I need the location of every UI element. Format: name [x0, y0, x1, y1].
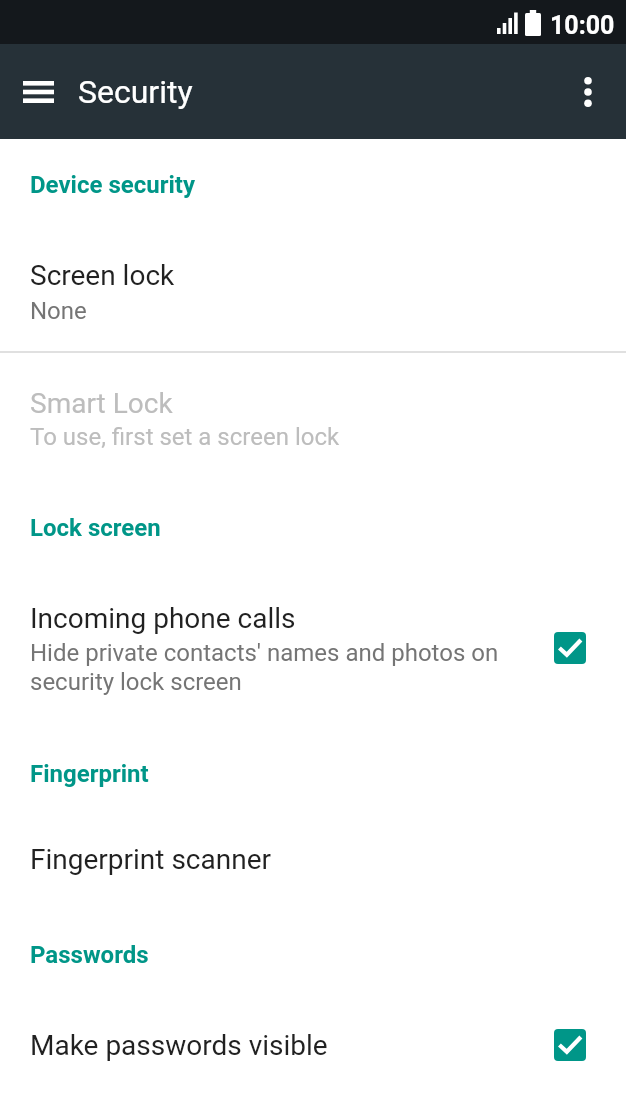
staticText: None	[30, 297, 87, 325]
staticText: Make passwords visible	[30, 1029, 328, 1062]
staticText: Fingerprint	[30, 760, 149, 788]
staticText: 10:00	[550, 11, 615, 40]
staticText: Smart Lock	[30, 387, 173, 420]
button[interactable]: Screen lock	[0, 228, 626, 352]
staticText: To use, first set a screen lock	[30, 423, 340, 451]
button[interactable]	[14, 68, 62, 116]
staticText: Screen lock	[30, 259, 175, 292]
staticText: Lock screen	[30, 514, 161, 542]
staticText: Device security	[30, 171, 195, 199]
staticText: Security	[78, 73, 193, 111]
button[interactable]: Make passwords visible	[0, 1000, 626, 1090]
button[interactable]: Incoming phone calls	[0, 570, 626, 715]
staticText: Incoming phone calls	[30, 602, 296, 635]
button[interactable]	[564, 68, 612, 116]
staticText: Passwords	[30, 941, 149, 969]
button[interactable]: Fingerprint scanner	[0, 818, 626, 906]
staticText: Hide private contacts' names and photos …	[30, 639, 499, 696]
staticText: Fingerprint scanner	[30, 843, 271, 876]
